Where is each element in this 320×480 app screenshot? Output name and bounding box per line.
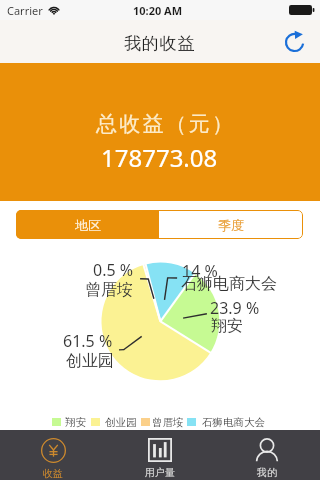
button[interactable]: 我的 (213, 430, 320, 480)
staticText: 石狮电商大会 (181, 274, 277, 294)
staticText: 178773.08 (101, 141, 218, 174)
button[interactable]: Refresh (277, 24, 313, 60)
staticText: 14 % (182, 260, 218, 282)
staticText: 10:20 AM (133, 3, 183, 18)
staticText: 收益 (43, 467, 63, 480)
staticText: 23.9 % (210, 297, 260, 319)
staticText: 翔安 (65, 416, 86, 429)
staticText: 我的 (257, 466, 277, 479)
button[interactable]: 收益 (0, 430, 106, 480)
staticText: 石狮电商大会 (202, 416, 265, 429)
staticText: 总收益（元） (96, 111, 236, 137)
staticText: 创业园 (66, 351, 114, 371)
staticText: 创业园 (105, 416, 137, 429)
staticText: 季度 (218, 217, 244, 233)
button[interactable]: 季度 (159, 210, 303, 239)
button[interactable]: 用户量 (106, 430, 213, 480)
button[interactable]: 地区 (16, 210, 159, 239)
staticText: 曾厝垵 (85, 280, 133, 300)
staticText: 地区 (75, 217, 101, 233)
staticText: 61.5 % (63, 330, 113, 352)
staticText: 0.5 % (93, 259, 134, 281)
staticText: 曾厝垵 (152, 416, 184, 429)
staticText: 用户量 (145, 466, 175, 479)
staticText: 我的收益 (124, 33, 196, 54)
staticText: Carrier (7, 3, 43, 18)
staticText: 翔安 (211, 316, 243, 336)
